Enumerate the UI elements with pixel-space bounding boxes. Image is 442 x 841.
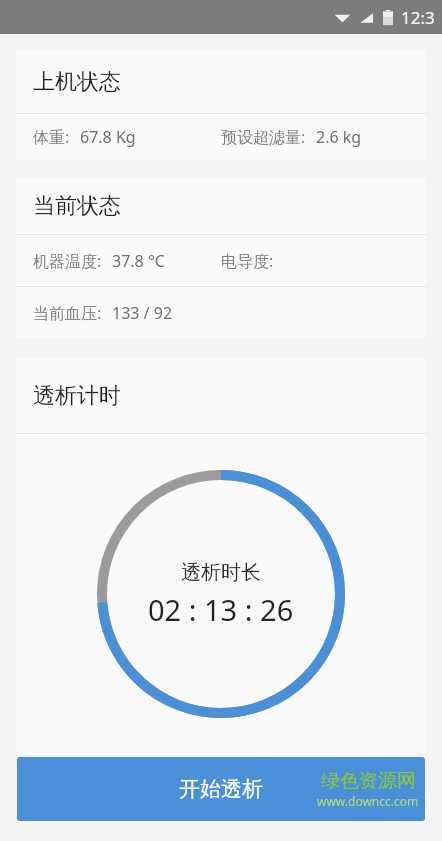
staticText: 上机状态 [33, 68, 121, 96]
staticText: 预设超滤量: [221, 126, 306, 148]
staticText: 133 / 92 [112, 302, 173, 324]
staticText: 02 : 13 : 26 [148, 590, 294, 629]
staticText: 当前血压: [33, 302, 102, 324]
staticText: 2.6 kg [316, 126, 362, 148]
staticText: www.downcc.com [317, 793, 419, 809]
staticText: 透析计时 [33, 382, 121, 410]
button[interactable]: 开始透析 [17, 757, 425, 821]
staticText: 12:3 [401, 6, 435, 29]
staticText: 当前状态 [33, 192, 121, 220]
staticText: 开始透析 [179, 776, 263, 802]
staticText: 透析时长 [181, 560, 261, 585]
staticText: 体重: [33, 126, 70, 148]
staticText: 绿色资源网 [321, 769, 416, 793]
staticText: 电导度: [221, 250, 274, 272]
staticText: 37.8 °C [112, 250, 165, 272]
staticText: 机器温度: [33, 250, 102, 272]
staticText: 67.8 Kg [80, 126, 136, 148]
